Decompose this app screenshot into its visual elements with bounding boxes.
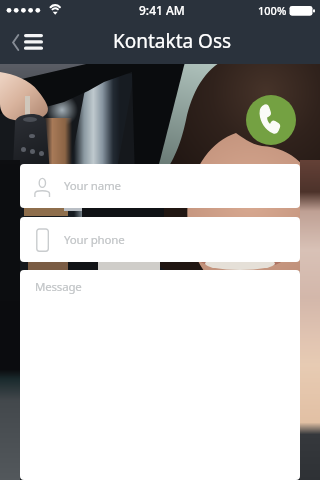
staticText: Kontakta Oss: [113, 28, 232, 54]
button[interactable]: Menu: [4, 24, 52, 60]
staticText: Your phone: [64, 232, 125, 248]
staticText: Your name: [64, 178, 121, 194]
staticText: Message: [35, 279, 82, 295]
staticText: 100%: [258, 3, 287, 18]
button[interactable]: Message: [20, 270, 300, 480]
staticText: 9:41 AM: [139, 2, 185, 18]
button[interactable]: Your name: [20, 164, 300, 208]
button[interactable]: Call: [246, 95, 296, 145]
button[interactable]: Your phone: [20, 217, 300, 262]
